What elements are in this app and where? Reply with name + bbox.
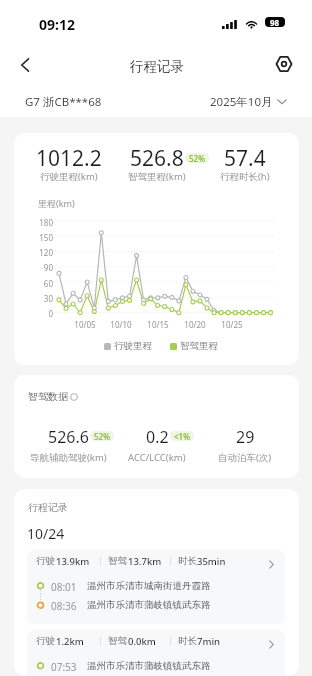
staticText: 09:12: [39, 15, 75, 34]
staticText: 90: [14, 262, 53, 273]
staticText: 08:01: [51, 580, 77, 594]
staticText: <1%: [174, 431, 190, 441]
staticText: 10/10: [107, 319, 135, 330]
staticText: 1012.2: [36, 144, 102, 173]
staticText: 温州市乐清市蒲岐镇镇武东路: [87, 599, 211, 611]
staticText: 时长: [178, 635, 197, 647]
staticText: 行驶: [36, 555, 55, 567]
button[interactable]: 2025年10月: [210, 94, 287, 110]
staticText: 温州市乐清市城南街道丹霞路: [87, 580, 211, 592]
staticText: 10/25: [218, 319, 246, 330]
staticText: 07:53: [51, 660, 77, 674]
staticText: 自动泊车(次): [218, 451, 272, 464]
staticText: 526.6: [48, 426, 89, 448]
staticText: 行驶: [36, 635, 55, 647]
staticText: 13.7km: [128, 555, 162, 568]
staticText: 导航辅助驾驶(km): [30, 451, 107, 464]
staticText: 150: [14, 232, 53, 243]
staticText: 120: [14, 247, 53, 258]
staticText: 温州市乐清市蒲岐镇镇武东路: [87, 660, 211, 672]
staticText: 08:36: [51, 599, 77, 613]
button[interactable]: Back: [9, 49, 41, 81]
staticText: 智驾里程: [180, 340, 218, 352]
staticText: 60: [14, 278, 53, 289]
staticText: 52%: [189, 153, 205, 163]
staticText: 10/20: [181, 319, 209, 330]
staticText: 10/05: [71, 319, 99, 330]
staticText: 0.2: [146, 426, 169, 448]
button[interactable]: 行驶: [27, 630, 285, 676]
staticText: 智驾数据: [28, 390, 68, 403]
staticText: 行程记录: [28, 501, 68, 514]
staticText: 10/24: [27, 524, 65, 543]
staticText: 30: [14, 293, 53, 304]
staticText: 0.0km: [128, 635, 156, 648]
staticText: 2025年10月: [210, 94, 273, 110]
staticText: 时长: [178, 555, 197, 567]
staticText: 180: [14, 217, 53, 228]
staticText: 29: [236, 426, 255, 448]
staticText: 13.9km: [56, 555, 90, 568]
staticText: 98: [270, 17, 280, 27]
staticText: 行驶里程: [114, 340, 152, 352]
staticText: 行驶里程(km): [40, 170, 98, 183]
staticText: 智驾里程(km): [128, 170, 186, 183]
staticText: G7 浙CB***68: [25, 94, 102, 110]
staticText: 1.2km: [56, 635, 84, 648]
staticText: 7min: [197, 635, 220, 648]
button[interactable]: Settings: [268, 48, 300, 80]
staticText: 行程时长(h): [220, 170, 270, 183]
staticText: 10/15: [144, 319, 172, 330]
staticText: 57.4: [224, 144, 266, 173]
staticText: 里程(km): [38, 197, 75, 209]
staticText: 52%: [94, 431, 110, 441]
staticText: 35min: [197, 555, 226, 568]
staticText: 0: [14, 308, 53, 319]
staticText: 526.8: [130, 144, 184, 173]
staticText: 行程记录: [130, 58, 184, 75]
button[interactable]: 行驶: [27, 550, 285, 624]
staticText: 智驾: [108, 635, 127, 647]
staticText: 智驾: [108, 555, 127, 567]
staticText: ACC/LCC(km): [128, 451, 186, 464]
